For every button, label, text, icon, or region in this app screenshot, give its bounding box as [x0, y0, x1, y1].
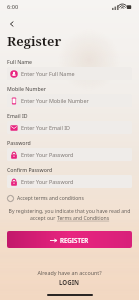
button[interactable]: Enter Your Password: [7, 175, 132, 188]
button[interactable]: Accept terms and conditions: [7, 195, 132, 202]
button[interactable]: LOGIN: [0, 278, 139, 286]
staticText: Mobile Number: [7, 85, 46, 92]
staticText: Enter Your Email ID: [21, 124, 70, 131]
staticText: By registering, you indicate that you ha…: [7, 208, 132, 215]
staticText: Accept terms and conditions: [17, 195, 84, 202]
staticText: Enter Your Full Name: [21, 70, 75, 77]
staticText: Register: [7, 32, 62, 50]
staticText: LOGIN: [59, 278, 80, 286]
button[interactable]: Enter Your Full Name: [7, 67, 132, 80]
button[interactable]: Terms and Conditions: [57, 215, 110, 222]
staticText: Confirm Password: [7, 166, 53, 173]
button[interactable]: Enter Your Password: [7, 148, 132, 161]
staticText: Enter Your Password: [21, 178, 74, 185]
staticText: accept our: [30, 215, 57, 222]
staticText: REGISTER: [60, 236, 89, 244]
button[interactable]: Enter Your Email ID: [7, 121, 132, 134]
staticText: Password: [7, 139, 31, 146]
staticText: Full Name: [7, 58, 33, 65]
button[interactable]: Enter Your Mobile Number: [7, 94, 132, 107]
staticText: Terms and Conditions: [57, 215, 110, 222]
staticText: Email ID: [7, 112, 28, 119]
button[interactable]: Back: [5, 17, 19, 31]
staticText: Enter Your Mobile Number: [21, 97, 89, 104]
button[interactable]: REGISTER: [7, 231, 132, 248]
staticText: Already have an account?: [0, 269, 139, 276]
staticText: 6:00: [7, 3, 19, 11]
staticText: Enter Your Password: [21, 151, 74, 158]
